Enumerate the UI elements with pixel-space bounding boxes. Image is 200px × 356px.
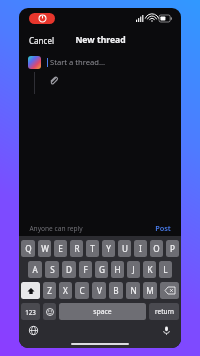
- staticText: G: [99, 264, 105, 275]
- button[interactable]: Shift: [21, 282, 40, 299]
- staticText: K: [147, 264, 153, 275]
- button[interactable]: 123: [21, 303, 40, 320]
- button[interactable]: F: [79, 261, 92, 278]
- other: Recording: [29, 13, 55, 24]
- staticText: T: [90, 243, 95, 254]
- staticText: X: [63, 285, 68, 296]
- button[interactable]: Dictation: [160, 324, 173, 337]
- button[interactable]: Attach: [47, 74, 59, 86]
- staticText: I: [139, 243, 142, 254]
- button[interactable]: Change keyboard: [27, 324, 40, 337]
- staticText: Q: [25, 243, 32, 254]
- staticText: U: [122, 243, 128, 254]
- staticText: R: [74, 243, 80, 254]
- button[interactable]: A: [28, 261, 42, 278]
- staticText: W: [41, 243, 49, 254]
- staticText: B: [113, 285, 119, 296]
- button[interactable]: L: [159, 261, 172, 278]
- button[interactable]: H: [111, 261, 124, 278]
- staticText: O: [153, 243, 160, 254]
- staticText: New thread: [75, 34, 126, 46]
- button[interactable]: return: [149, 303, 179, 320]
- button[interactable]: K: [143, 261, 156, 278]
- button[interactable]: U: [118, 240, 131, 257]
- staticText: N: [130, 285, 137, 296]
- button[interactable]: B: [109, 282, 123, 299]
- staticText: V: [97, 285, 102, 296]
- staticText: Cancel: [29, 35, 54, 46]
- staticText: D: [66, 264, 72, 275]
- staticText: 123: [25, 308, 36, 316]
- staticText: Start a thread...: [50, 57, 105, 67]
- staticText: E: [58, 243, 63, 254]
- button[interactable]: C: [75, 282, 89, 299]
- staticText: F: [83, 264, 88, 275]
- button[interactable]: X: [59, 282, 72, 299]
- button[interactable]: Z: [43, 282, 56, 299]
- staticText: space: [93, 307, 112, 316]
- button[interactable]: T: [86, 240, 99, 257]
- staticText: return: [155, 307, 174, 316]
- button[interactable]: Anyone can reply: [29, 222, 83, 235]
- button[interactable]: P: [166, 240, 179, 257]
- button[interactable]: Cancel: [19, 31, 64, 50]
- staticText: Y: [106, 243, 111, 254]
- button[interactable]: G: [95, 261, 108, 278]
- button[interactable]: Y: [102, 240, 115, 257]
- button[interactable]: I: [134, 240, 147, 257]
- button[interactable]: W: [38, 240, 51, 257]
- staticText: Post: [155, 223, 171, 233]
- staticText: P: [170, 243, 175, 254]
- button[interactable]: R: [70, 240, 83, 257]
- button[interactable]: space: [59, 303, 146, 320]
- button[interactable]: M: [143, 282, 157, 299]
- staticText: C: [79, 285, 85, 296]
- staticText: Z: [47, 285, 52, 296]
- staticText: S: [50, 264, 55, 275]
- button[interactable]: Post: [155, 221, 171, 235]
- staticText: J: [132, 264, 135, 275]
- button[interactable]: O: [150, 240, 163, 257]
- staticText: M: [146, 285, 154, 296]
- button[interactable]: V: [92, 282, 106, 299]
- staticText: A: [32, 264, 38, 275]
- button[interactable]: E: [54, 240, 67, 257]
- button[interactable]: S: [45, 261, 59, 278]
- staticText: Anyone can reply: [29, 224, 83, 233]
- button[interactable]: Emoji: [43, 303, 56, 320]
- button[interactable]: J: [127, 261, 140, 278]
- button[interactable]: N: [126, 282, 140, 299]
- button[interactable]: Profile picture: [28, 56, 41, 69]
- button[interactable]: Q: [21, 240, 35, 257]
- button[interactable]: D: [62, 261, 76, 278]
- staticText: L: [163, 264, 168, 275]
- button[interactable]: Delete: [160, 282, 179, 299]
- staticText: H: [114, 264, 121, 275]
